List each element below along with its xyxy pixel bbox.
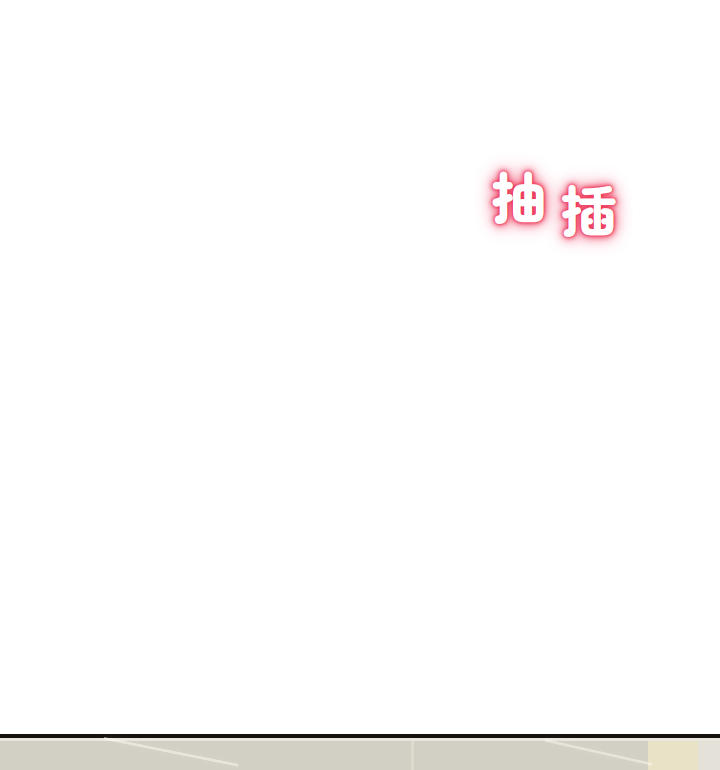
staticText: 插 [561,167,617,248]
staticText: 抽 [491,154,547,235]
button[interactable]: Comic page — tap to show reader controls [0,0,720,770]
